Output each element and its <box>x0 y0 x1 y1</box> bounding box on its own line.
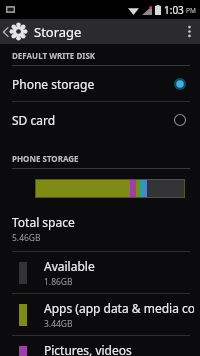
button[interactable]: Navigate up <box>0 19 29 44</box>
staticText: Phone storage <box>12 76 174 92</box>
button[interactable]: Phone storage <box>0 66 200 101</box>
staticText: SD card <box>12 112 174 128</box>
button[interactable]: Apps (app data & media content) <box>0 294 200 335</box>
button[interactable]: Pictures, videos <box>0 336 200 356</box>
staticText: Storage <box>34 23 82 41</box>
staticText: Pictures, videos <box>44 342 132 356</box>
staticText: 3.44GB <box>44 318 73 330</box>
staticText: PHONE STORAGE <box>12 153 79 164</box>
staticText: Available <box>44 258 95 274</box>
button[interactable]: Total space <box>0 210 200 251</box>
staticText: Total space <box>12 214 75 230</box>
staticText: PM <box>186 6 196 15</box>
staticText: DEFAULT WRITE DISK <box>12 50 96 61</box>
staticText: 5.46GB <box>12 232 41 244</box>
staticText: Apps (app data & media content) <box>44 300 194 316</box>
button[interactable]: Available <box>0 252 200 293</box>
staticText: 1.86GB <box>44 276 73 288</box>
staticText: 1:03 <box>164 3 184 17</box>
button[interactable]: More options <box>178 19 200 44</box>
button[interactable]: SD card <box>0 102 200 137</box>
